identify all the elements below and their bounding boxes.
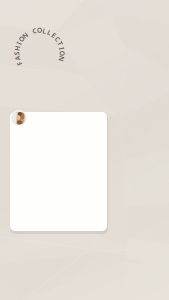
staticText: F	[37, 26, 41, 35]
staticText: C	[37, 26, 41, 35]
staticText: A	[37, 26, 41, 35]
staticText: I	[38, 26, 40, 35]
staticText: E	[37, 26, 41, 35]
staticText: C	[37, 26, 41, 35]
staticText: N	[37, 26, 42, 35]
staticText: O	[37, 26, 42, 35]
staticText: L	[37, 26, 41, 35]
staticText: H	[37, 26, 42, 35]
staticText: T	[37, 26, 41, 35]
staticText: O	[37, 26, 42, 35]
staticText: L	[37, 26, 41, 35]
staticText: O	[37, 26, 42, 35]
button[interactable]	[10, 112, 107, 231]
button[interactable]: Profile	[11, 110, 27, 126]
staticText: S	[37, 26, 41, 35]
staticText: N	[37, 26, 42, 35]
staticText: I	[38, 26, 40, 35]
staticText	[38, 26, 40, 35]
